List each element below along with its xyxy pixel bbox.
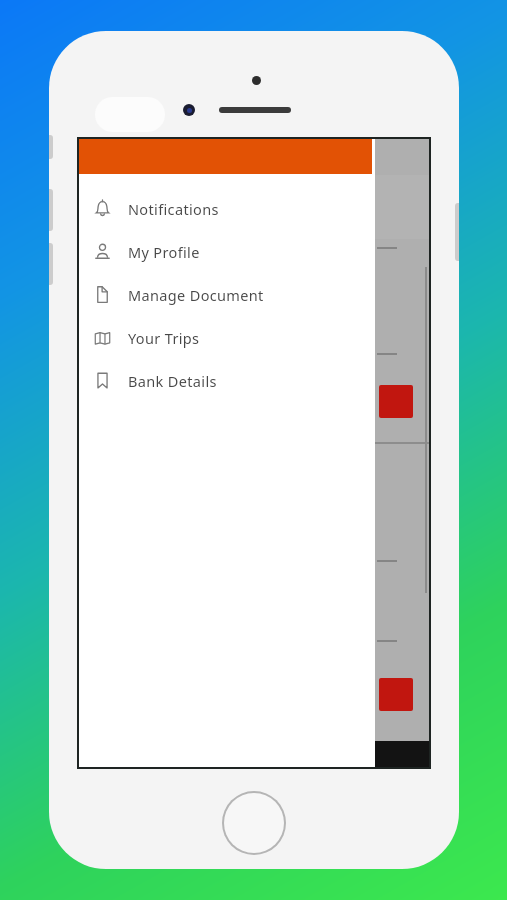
staticText: Manage Document [128,285,264,305]
button[interactable]: Home button [224,793,284,853]
staticText: Your Trips [128,328,200,348]
button[interactable]: My Profile [79,230,372,273]
button[interactable]: Your Trips [79,316,372,359]
button[interactable]: Bank Details [79,359,372,402]
button[interactable]: Manage Document [79,273,372,316]
staticText: Notifications [128,199,219,219]
staticText: Bank Details [128,371,217,391]
button[interactable]: Notifications [79,187,372,230]
staticText: My Profile [128,242,200,262]
